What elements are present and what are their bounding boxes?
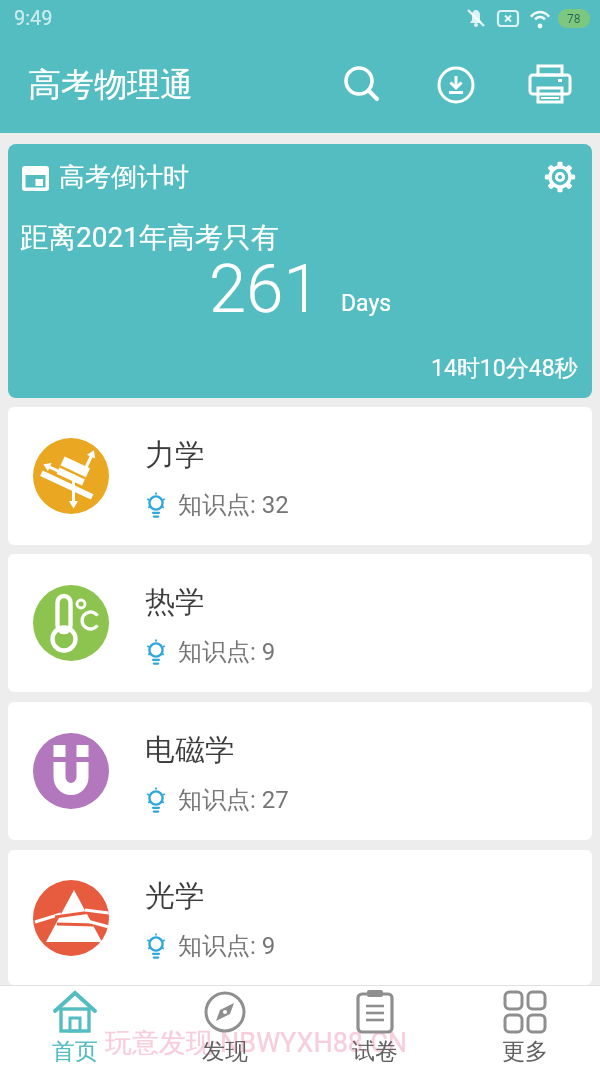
button[interactable]: 热学 [8, 554, 592, 692]
staticText: 更多 [502, 1037, 548, 1066]
button[interactable]: 高考倒计时 [8, 144, 592, 398]
staticText: 光学 [145, 877, 205, 915]
button[interactable]: 力学 [8, 407, 592, 545]
staticText: 玩意发现·NBWYXH88.CN [105, 1026, 407, 1060]
button[interactable]: 更多 [450, 985, 600, 1067]
staticText: 78 [567, 12, 581, 26]
staticText: 14时10分48秒 [431, 354, 578, 383]
staticText: Days [341, 290, 392, 317]
staticText: 9:49 [14, 6, 53, 29]
staticText: 知识点: 27 [178, 785, 289, 815]
staticText: 发现 [202, 1037, 248, 1066]
staticText: 高考物理通 [28, 64, 193, 106]
button[interactable] [540, 157, 580, 197]
button[interactable] [334, 57, 390, 113]
button[interactable]: 电磁学 [8, 702, 592, 840]
staticText: 知识点: 32 [178, 490, 289, 520]
staticText: 知识点: 9 [178, 931, 276, 961]
staticText: 热学 [145, 583, 205, 621]
button[interactable]: 试卷 [300, 985, 450, 1067]
staticText: 距离2021年高考只有 [20, 220, 279, 255]
button[interactable]: 光学 [8, 850, 592, 985]
staticText: 知识点: 9 [178, 637, 276, 667]
button[interactable]: 发现 [150, 985, 300, 1067]
staticText: 261 [209, 250, 321, 329]
button[interactable] [522, 57, 578, 113]
staticText: 电磁学 [145, 731, 235, 769]
staticText: 试卷 [352, 1037, 398, 1066]
staticText: 首页 [52, 1037, 98, 1066]
staticText: 高考倒计时 [59, 161, 189, 194]
button[interactable] [428, 57, 484, 113]
staticText: 力学 [145, 436, 205, 474]
button[interactable]: 首页 [0, 985, 150, 1067]
